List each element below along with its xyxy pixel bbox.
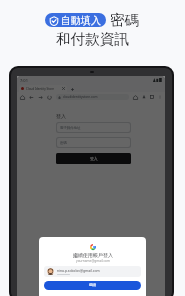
button[interactable]: Cloud Identity Store: [19, 85, 67, 92]
button[interactable]: 登入: [56, 153, 131, 164]
button[interactable]: 繼續: [44, 281, 141, 290]
staticText: 7:01: [20, 78, 28, 83]
staticText: 繼續使用帳戶登入: [73, 252, 113, 258]
button[interactable]: 電子郵件地址: [57, 123, 130, 132]
staticText: Cloud Identity Store: [26, 87, 55, 91]
button[interactable]: 自動填入: [45, 13, 106, 27]
staticText: yourname@gmail.com: [76, 259, 110, 263]
button[interactable]: nina.p.sokolov@gmail.com: [44, 266, 141, 277]
staticText: 登入: [90, 156, 98, 161]
staticText: 登入: [56, 113, 66, 119]
staticText: 自動填入: [61, 14, 101, 27]
staticText: 和付款資訊: [56, 30, 129, 48]
staticText: 繼續: [89, 283, 97, 288]
button[interactable]: cloudidentitystore.com: [56, 94, 129, 100]
staticText: 電子郵件地址: [60, 126, 81, 130]
staticText: nina.p.sokolov@gmail.com: [57, 268, 100, 273]
staticText: 密碼: [110, 11, 140, 29]
staticText: 密碼: [60, 141, 67, 145]
button[interactable]: 密碼: [57, 138, 130, 147]
staticText: cloudidentitystore.com: [63, 95, 98, 99]
button[interactable]: New tab: [70, 87, 75, 92]
